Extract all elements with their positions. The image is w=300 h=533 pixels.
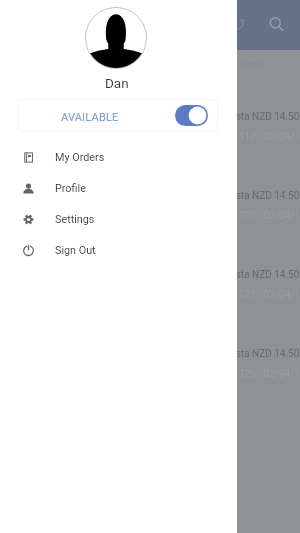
button[interactable]: Sign Out (0, 235, 237, 266)
staticText: NZD 14.50 (252, 111, 300, 123)
staticText: Done (240, 58, 265, 70)
button[interactable]: Settings (0, 204, 237, 235)
staticText: 126 - 02/04/16 (239, 368, 300, 380)
button[interactable]: Search (263, 11, 287, 35)
button[interactable]: Profile (0, 173, 237, 204)
staticText: 123 - 02/04/16 (239, 289, 300, 301)
staticText: 120 - 02/04/16 (239, 210, 300, 222)
staticText: Settings (55, 213, 95, 226)
staticText: Dan (105, 75, 129, 91)
button[interactable]: AVAILABLE (18, 99, 218, 132)
staticText: Profile (55, 182, 86, 195)
staticText: AVAILABLE (61, 111, 119, 124)
staticText: Pasta (224, 111, 250, 123)
staticText: NZD 14.50 (252, 269, 300, 281)
staticText: NZD 14.50 (252, 190, 300, 202)
staticText: Pasta (224, 269, 250, 281)
button[interactable]: My Orders (0, 142, 237, 173)
staticText: Pasta (224, 348, 250, 360)
staticText: NZD 14.50 (252, 348, 300, 360)
staticText: 117 - 02/04/16 (239, 131, 300, 143)
staticText: Pasta (224, 190, 250, 202)
staticText: My Orders (55, 151, 105, 164)
button[interactable]: Refresh (225, 12, 249, 36)
button[interactable]: Done (231, 53, 273, 75)
staticText: Sign Out (55, 244, 96, 257)
